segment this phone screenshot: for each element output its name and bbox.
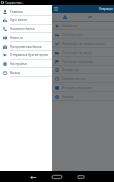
button[interactable]: Курс валют [0, 15, 52, 24]
staticText: Обязательства [62, 77, 85, 81]
button[interactable]: Конверсии [52, 65, 114, 74]
button[interactable]: Обязательства [52, 74, 114, 83]
staticText: Переводы на карту [62, 51, 92, 55]
button[interactable]: Контакты банка [0, 24, 52, 33]
button[interactable]: Рублевые переводы [52, 57, 114, 66]
button[interactable]: Шаблоны [52, 21, 114, 30]
button[interactable]: Заявки [52, 92, 114, 101]
staticText: Оплата услуг [62, 33, 83, 37]
button[interactable]: Отправка в бухгалтерию [0, 50, 52, 59]
staticText: Операции [99, 7, 113, 11]
button[interactable]: Новости [0, 33, 52, 42]
button[interactable]: Transfers [77, 13, 102, 20]
button[interactable]: Back [28, 172, 38, 182]
staticText: Сохранение… [5, 1, 25, 5]
staticText: Выход [10, 71, 20, 75]
button[interactable]: Оплата услуг [52, 30, 114, 39]
button[interactable]: Настройки [0, 59, 52, 68]
staticText: Предложения банка [10, 45, 42, 49]
button[interactable]: Выход [0, 68, 52, 77]
button[interactable]: Home [52, 172, 62, 182]
staticText: Главная [10, 10, 23, 14]
staticText: Рублевые переводы [62, 60, 94, 64]
staticText: Отправка в бухгалтерию [10, 53, 48, 57]
staticText: Конверсии [62, 68, 79, 72]
button[interactable]: Главная [0, 7, 52, 16]
staticText: Заявки [62, 95, 73, 99]
button[interactable]: Предложения банка [0, 42, 52, 51]
staticText: Переводы по своим счетам [62, 42, 105, 46]
staticText: Шаблоны [62, 24, 78, 28]
button[interactable]: Recents [76, 172, 86, 182]
button[interactable]: Переводы по своим счетам [52, 39, 114, 48]
staticText: Курс валют [10, 18, 28, 22]
button[interactable]: Open navigation menu [53, 6, 59, 12]
button[interactable]: Переводы на карту [52, 48, 114, 57]
button[interactable]: Accounts [52, 13, 77, 20]
staticText: Настройки [10, 62, 27, 66]
staticText: Контакты банка [10, 27, 35, 31]
button[interactable]: История операций [52, 83, 114, 92]
staticText: История операций [62, 86, 92, 90]
staticText: Новости [10, 36, 23, 40]
